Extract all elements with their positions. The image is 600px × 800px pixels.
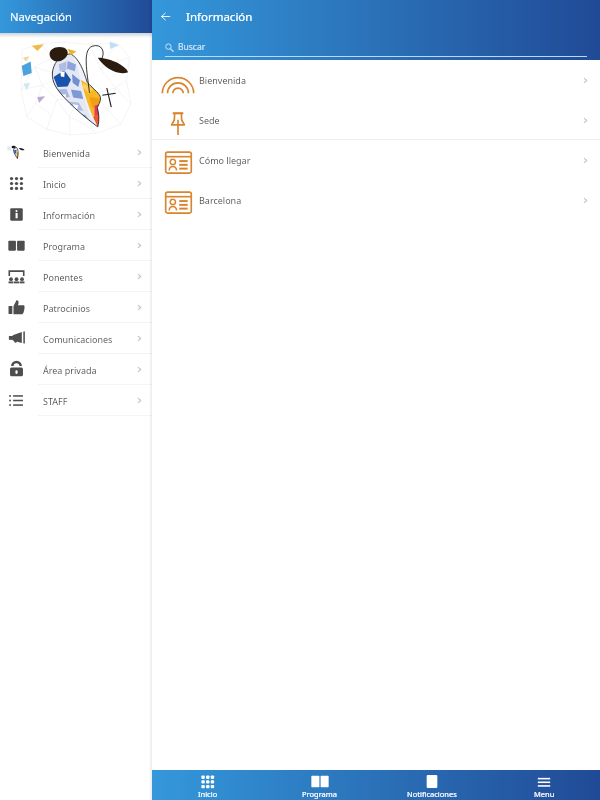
- staticText: Información: [43, 209, 135, 221]
- button[interactable]: Bienvenida: [152, 60, 600, 100]
- staticText: Bienvenida: [199, 74, 581, 86]
- staticText: Patrocinios: [43, 302, 135, 314]
- staticText: Área privada: [43, 364, 135, 376]
- staticText: STAFF: [43, 395, 135, 407]
- button[interactable]: Notificaciones: [376, 770, 488, 800]
- staticText: Ponentes: [43, 271, 135, 283]
- staticText: Inicio: [198, 789, 218, 799]
- button[interactable]: STAFF: [0, 385, 152, 416]
- staticText: Programa: [43, 240, 135, 252]
- staticText: Bienvenida: [43, 147, 135, 159]
- button[interactable]: Back: [150, 0, 180, 33]
- button[interactable]: Inicio: [152, 770, 264, 800]
- staticText: Barcelona: [199, 194, 581, 206]
- staticText: Sede: [199, 114, 581, 126]
- staticText: Notificaciones: [407, 789, 457, 799]
- staticText: Información: [186, 9, 253, 33]
- button[interactable]: Sede: [152, 100, 600, 140]
- staticText: Buscar: [178, 41, 206, 53]
- staticText: Cómo llegar: [199, 154, 581, 166]
- staticText: Inicio: [43, 178, 135, 190]
- button[interactable]: Área privada: [0, 354, 152, 385]
- button[interactable]: Inicio: [0, 168, 152, 199]
- button[interactable]: Menu: [488, 770, 600, 800]
- staticText: Comunicaciones: [43, 333, 135, 345]
- button[interactable]: Barcelona: [152, 180, 600, 220]
- button[interactable]: Comunicaciones: [0, 323, 152, 354]
- button[interactable]: Patrocinios: [0, 292, 152, 323]
- button[interactable]: Información: [0, 199, 152, 230]
- button[interactable]: Cómo llegar: [152, 140, 600, 180]
- staticText: Programa: [302, 789, 338, 799]
- button[interactable]: Programa: [0, 230, 152, 261]
- staticText: Menu: [534, 789, 555, 799]
- staticText: Navegación: [10, 9, 72, 24]
- button[interactable]: Ponentes: [0, 261, 152, 292]
- button[interactable]: Programa: [264, 770, 376, 800]
- button[interactable]: Bienvenida: [0, 137, 152, 168]
